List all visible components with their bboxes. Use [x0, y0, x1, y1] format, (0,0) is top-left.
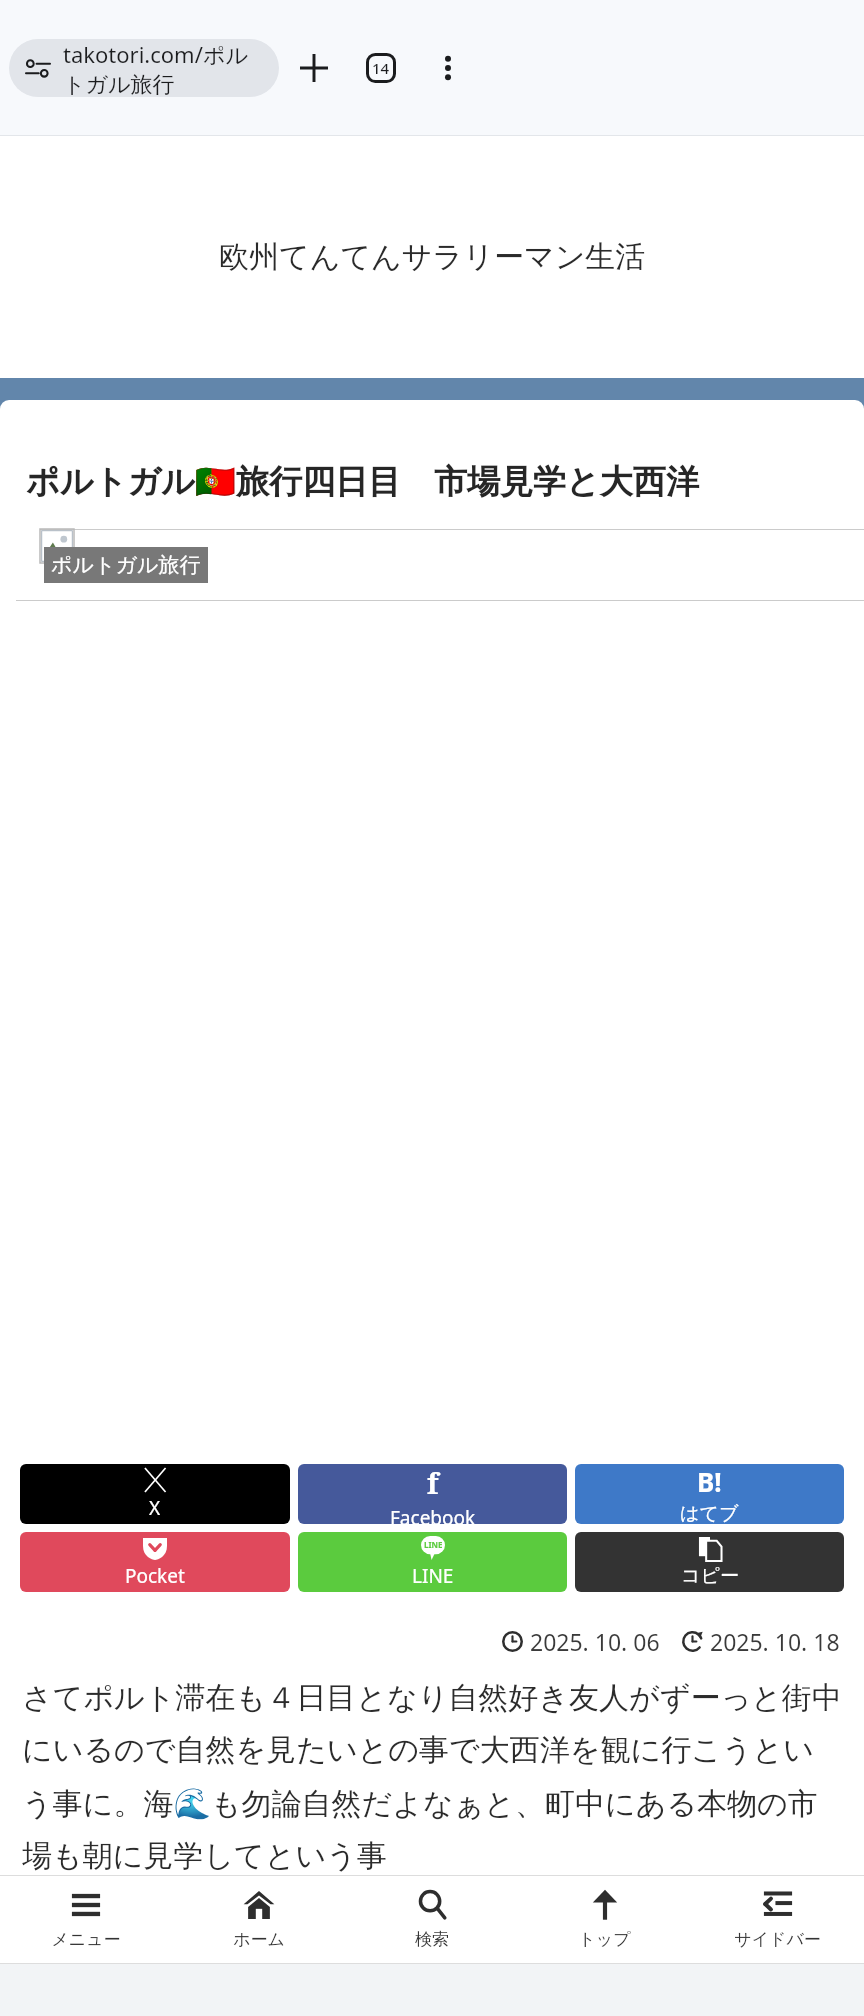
button[interactable]: LINE	[298, 1532, 567, 1592]
staticText: ポルトガル旅行	[51, 552, 201, 578]
button[interactable]: トップ	[518, 1876, 691, 1963]
staticText: 検索	[415, 1929, 449, 1950]
button[interactable]: Tab switcher, 14 tabs	[352, 39, 410, 97]
staticText: コピー	[681, 1564, 739, 1588]
button[interactable]: X	[20, 1464, 290, 1524]
staticText: 2025. 10. 18	[710, 1626, 840, 1657]
button[interactable]: メニュー	[0, 1876, 172, 1963]
staticText: Facebook	[390, 1505, 476, 1524]
staticText: LINE	[412, 1563, 454, 1589]
button[interactable]: takotori.com/ポルトガル旅行	[9, 39, 279, 97]
button[interactable]: B!	[575, 1464, 844, 1524]
staticText: LINE	[424, 1539, 443, 1550]
button[interactable]: 検索	[345, 1876, 518, 1963]
button[interactable]: 欧州てんてんサラリーマン生活	[0, 136, 864, 378]
staticText: ポルトガル🇵🇹旅行四日目 市場見学と大西洋	[26, 458, 838, 503]
staticText: 2025. 10. 06	[530, 1626, 660, 1657]
staticText: ホーム	[233, 1929, 285, 1950]
staticText: takotori.com/ポルトガル旅行	[63, 39, 269, 97]
staticText: Pocket	[125, 1563, 185, 1589]
staticText: 14	[372, 58, 390, 78]
button[interactable]: New tab	[285, 39, 343, 97]
staticText: さてポルト滞在も４日目となり自然好き友人がずーっと街中にいるので自然を見たいとの…	[22, 1679, 842, 1875]
button[interactable]: More options	[419, 39, 477, 97]
staticText: X	[149, 1495, 161, 1521]
button[interactable]: Pocket	[20, 1532, 290, 1592]
staticText: f	[427, 1464, 439, 1502]
staticText: トップ	[578, 1929, 631, 1950]
staticText: メニュー	[51, 1929, 121, 1950]
staticText: サイドバー	[734, 1929, 821, 1950]
staticText: はてブ	[680, 1502, 739, 1524]
staticText: 欧州てんてんサラリーマン生活	[219, 238, 646, 276]
button[interactable]: コピー	[575, 1532, 844, 1592]
button[interactable]: f	[298, 1464, 567, 1524]
staticText: B!	[697, 1464, 722, 1499]
button[interactable]: サイドバー	[691, 1876, 864, 1963]
button[interactable]: ホーム	[172, 1876, 345, 1963]
